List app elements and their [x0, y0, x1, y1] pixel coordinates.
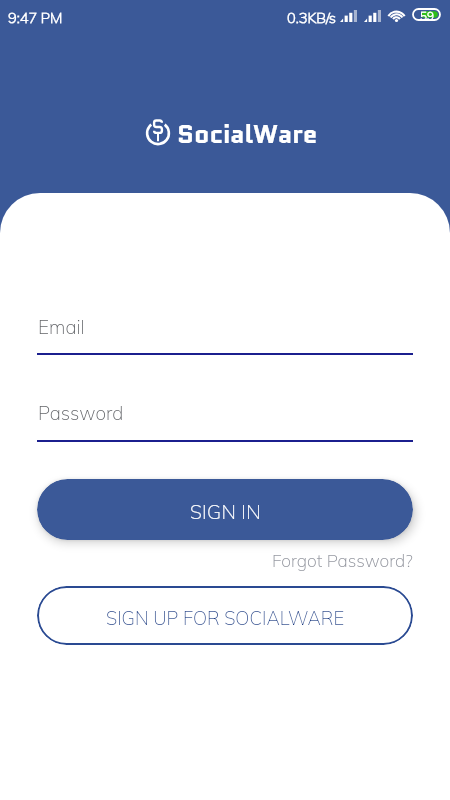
staticText: Email [38, 315, 85, 339]
button[interactable]: Email [37, 301, 413, 351]
button[interactable]: SIGN IN [37, 479, 413, 540]
button[interactable]: SIGN UP FOR SOCIALWARE [37, 586, 413, 645]
staticText: Forgot Password? [272, 549, 413, 571]
staticText: SIGN IN [190, 499, 261, 523]
button[interactable]: Forgot Password? [265, 547, 413, 573]
button[interactable]: Password [37, 387, 413, 437]
staticText: Password [38, 401, 124, 425]
staticText: SIGN UP FOR SOCIALWARE [106, 606, 345, 629]
staticText: 59 [420, 8, 434, 21]
staticText: SocialWare [177, 115, 318, 152]
staticText: 9:47 PM [8, 8, 63, 26]
staticText: 0.3KB/s [287, 8, 336, 26]
